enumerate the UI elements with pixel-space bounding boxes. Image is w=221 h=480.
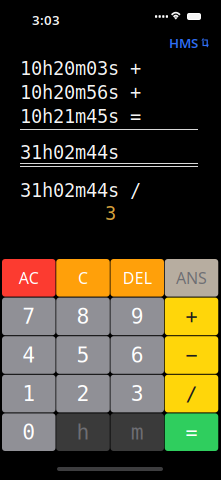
staticText: m (131, 420, 144, 444)
button[interactable]: AC (2, 259, 55, 297)
staticText: 10h20m03s + (20, 58, 141, 79)
button[interactable]: 9 (110, 298, 164, 335)
staticText: 8 (76, 304, 89, 328)
staticText: 31h02m44s (20, 142, 119, 163)
button[interactable]: 3 (110, 375, 164, 412)
staticText: 3 (131, 381, 144, 406)
staticText: = (185, 421, 197, 444)
staticText: 3:03 (32, 11, 60, 29)
staticText: 3 (105, 203, 116, 224)
staticText: 6 (131, 343, 144, 367)
button[interactable]: DEL (110, 259, 164, 297)
staticText: 1 (22, 381, 35, 406)
staticText: DEL (123, 267, 152, 288)
staticText: AC (19, 267, 39, 288)
staticText: 10h20m56s + (20, 82, 141, 103)
button[interactable]: 7 (2, 298, 55, 335)
staticText: 31h02m44s / (20, 180, 141, 201)
staticText: 0 (22, 420, 35, 444)
button[interactable]: − (165, 336, 218, 374)
button[interactable]: 1 (2, 375, 55, 412)
button[interactable]: m (110, 413, 164, 451)
staticText: − (185, 344, 197, 366)
staticText: h (76, 420, 89, 444)
button[interactable]: + (165, 298, 218, 335)
button[interactable]: 6 (110, 336, 164, 374)
staticText: / (185, 382, 197, 405)
staticText: 9 (131, 304, 144, 328)
staticText: 10h21m45s = (20, 106, 141, 127)
button[interactable]: h (56, 413, 110, 451)
staticText: C (78, 267, 88, 288)
staticText: 5 (76, 343, 89, 367)
button[interactable]: C (56, 259, 110, 297)
button[interactable]: ANS (165, 259, 218, 297)
staticText: 2 (76, 381, 89, 406)
staticText: ANS (176, 267, 207, 288)
button[interactable]: = (165, 413, 218, 451)
button[interactable]: 2 (56, 375, 110, 412)
button[interactable]: 5 (56, 336, 110, 374)
button[interactable]: 8 (56, 298, 110, 335)
staticText: + (185, 305, 197, 328)
staticText: HMS (169, 34, 198, 52)
staticText: 4 (22, 343, 35, 367)
button[interactable]: / (165, 375, 218, 412)
staticText: 7 (22, 304, 35, 328)
button[interactable]: HMS (166, 31, 213, 55)
button[interactable]: 0 (2, 413, 55, 451)
button[interactable]: 4 (2, 336, 55, 374)
